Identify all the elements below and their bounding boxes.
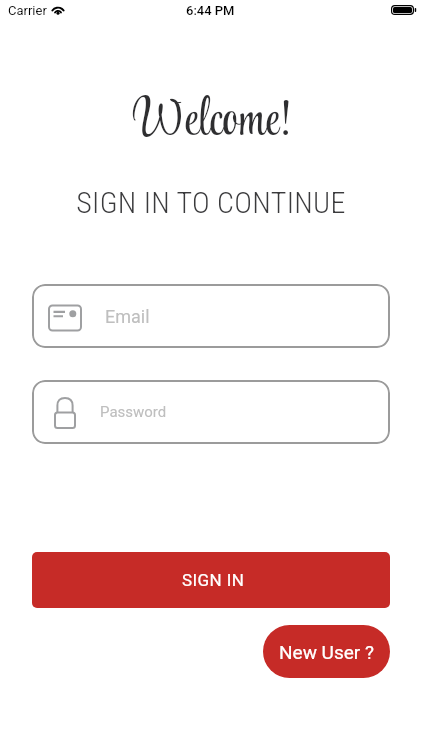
button[interactable]: New User ? (263, 625, 390, 678)
staticText: 6:44 PM (186, 3, 235, 18)
staticText: SIGN IN TO CONTINUE (76, 185, 346, 217)
staticText: Carrier (8, 3, 47, 18)
button[interactable]: Email (32, 284, 390, 348)
other: Password (48, 396, 82, 430)
staticText: New User ? (279, 641, 374, 663)
other: Email (48, 304, 82, 332)
staticText: Email (105, 306, 150, 327)
button[interactable]: Password (32, 380, 390, 444)
staticText: Welcome! (132, 84, 290, 146)
staticText: Password (100, 403, 167, 421)
staticText: SIGN IN (182, 570, 245, 590)
button[interactable]: SIGN IN (32, 552, 390, 608)
